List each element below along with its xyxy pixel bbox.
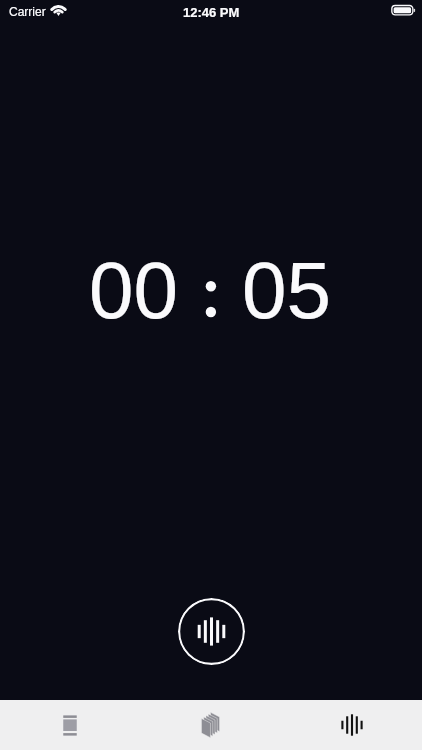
staticText: 05: [242, 246, 331, 335]
button[interactable]: Start recording: [178, 598, 245, 665]
staticText: Carrier: [9, 5, 46, 18]
button[interactable]: Layers: [140, 700, 281, 750]
staticText: 12:46 PM: [183, 5, 240, 20]
button[interactable]: Library: [0, 700, 140, 750]
button[interactable]: Recorder: [281, 700, 422, 750]
staticText: 00: [89, 246, 178, 335]
